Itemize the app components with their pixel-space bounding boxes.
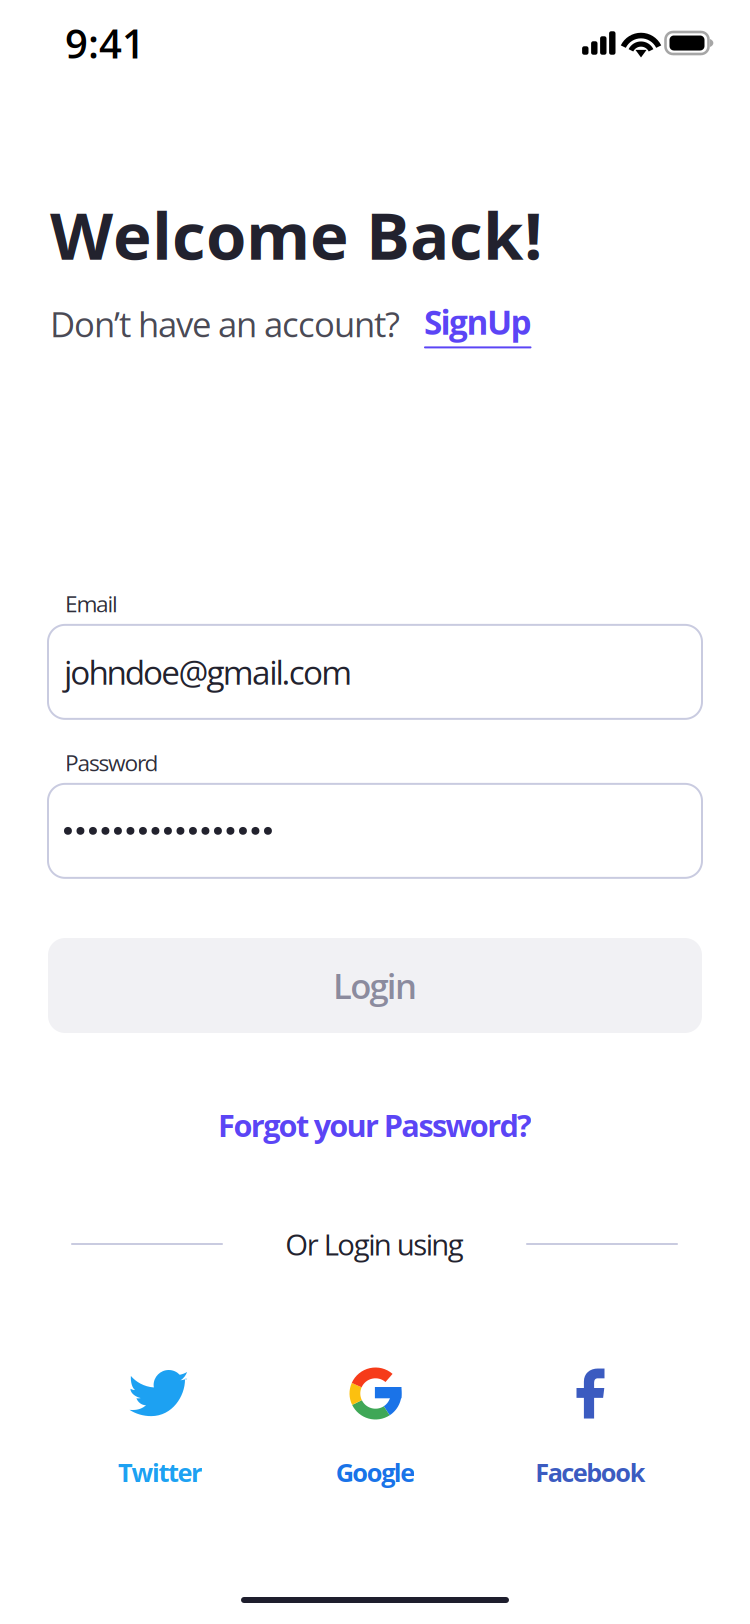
staticText: johndoe@gmail.com (64, 649, 352, 695)
staticText: Or Login using (285, 1224, 464, 1264)
button[interactable]: Facebook (483, 1367, 698, 1489)
staticText: Password (65, 747, 158, 778)
staticText: Facebook (535, 1455, 646, 1489)
staticText: Login (333, 962, 417, 1009)
button[interactable]: Google (268, 1367, 483, 1489)
staticText: Welcome Back! (50, 190, 543, 279)
button[interactable]: Twitter (53, 1367, 268, 1489)
button[interactable]: Login (48, 938, 702, 1033)
staticText: 9:41 (65, 16, 145, 70)
staticText: Don’t have an account? (50, 300, 400, 347)
staticText: Email (65, 588, 118, 619)
staticText: Twitter (118, 1455, 203, 1489)
staticText: Forgot your Password? (218, 1104, 532, 1146)
staticText: Google (336, 1455, 415, 1489)
button[interactable]: Forgot your Password? (48, 1100, 702, 1150)
button[interactable]: SignUp (400, 299, 531, 348)
staticText: SignUp (424, 299, 531, 344)
